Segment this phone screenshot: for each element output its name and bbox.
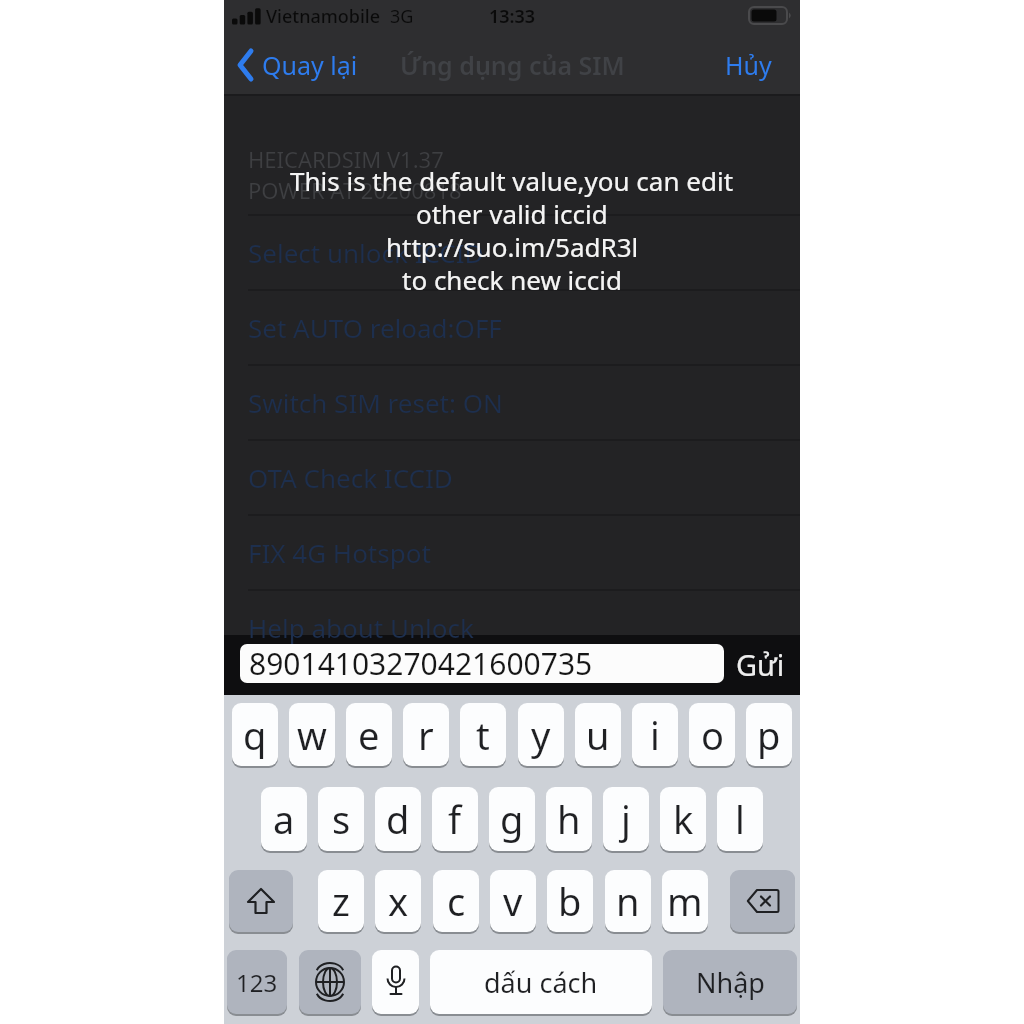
button[interactable]: u <box>575 703 621 766</box>
button[interactable]: Gửi <box>736 641 1024 687</box>
button[interactable]: d <box>375 787 421 851</box>
staticText: Ứng dụng của SIM <box>400 48 625 82</box>
button[interactable]: x <box>375 870 421 932</box>
staticText: 89014103270421600735 <box>249 643 593 684</box>
staticText: s <box>332 793 351 845</box>
staticText: http://suo.im/5adR3l <box>386 229 639 264</box>
staticText: Nhập <box>696 964 765 1001</box>
button[interactable]: Help about Unlock <box>248 606 808 648</box>
staticText: h <box>557 793 581 845</box>
staticText: POWER AT 20200818 <box>248 175 462 205</box>
staticText: e <box>358 709 380 761</box>
button[interactable]: l <box>717 787 763 851</box>
button[interactable]: 123 <box>227 950 287 1014</box>
button[interactable]: h <box>546 787 592 851</box>
button[interactable]: FIX 4G Hotspot <box>248 531 808 573</box>
button[interactable]: q <box>232 703 278 766</box>
staticText: other valid iccid <box>416 196 608 231</box>
button[interactable]: Hủy <box>725 45 1024 85</box>
staticText: HEICARDSIM V1.37 <box>248 144 444 174</box>
staticText: FIX 4G Hotspot <box>248 535 431 570</box>
staticText: 3G <box>390 4 414 29</box>
button[interactable] <box>299 950 361 1014</box>
staticText: i <box>650 709 660 761</box>
staticText: g <box>500 793 524 845</box>
staticText: OTA Check ICCID <box>248 460 453 495</box>
staticText: y <box>531 709 551 761</box>
button[interactable]: Quay lại <box>262 45 822 85</box>
staticText: j <box>621 793 631 845</box>
button[interactable] <box>238 50 254 80</box>
button[interactable]: v <box>490 870 536 932</box>
button[interactable]: Set AUTO reload:OFF <box>248 306 808 348</box>
button[interactable]: z <box>318 870 364 932</box>
button[interactable] <box>372 950 419 1014</box>
button[interactable]: p <box>746 703 792 766</box>
staticText: r <box>418 709 434 761</box>
staticText: to check new iccid <box>402 262 622 297</box>
staticText: n <box>616 875 640 927</box>
button[interactable]: f <box>432 787 478 851</box>
staticText: Gửi <box>736 645 785 684</box>
button[interactable]: s <box>318 787 364 851</box>
button[interactable] <box>229 870 293 932</box>
staticText: c <box>447 875 466 927</box>
staticText: f <box>448 793 462 845</box>
staticText: 13:33 <box>489 4 536 29</box>
button[interactable]: c <box>433 870 479 932</box>
button[interactable]: e <box>346 703 392 766</box>
staticText: u <box>586 709 610 761</box>
button[interactable]: y <box>518 703 564 766</box>
staticText: w <box>297 709 327 761</box>
staticText: l <box>735 793 745 845</box>
staticText: This is the default value,you can edit <box>290 163 734 198</box>
button[interactable]: dấu cách <box>430 950 652 1014</box>
button[interactable]: Switch SIM reset: ON <box>248 381 808 423</box>
staticText: Vietnamobile <box>266 4 380 29</box>
staticText: b <box>558 875 582 927</box>
button[interactable]: b <box>547 870 593 932</box>
staticText: 123 <box>236 966 278 999</box>
button[interactable]: i <box>632 703 678 766</box>
staticText: dấu cách <box>484 964 598 1001</box>
staticText: q <box>243 709 267 761</box>
button[interactable]: o <box>689 703 735 766</box>
button[interactable]: OTA Check ICCID <box>248 456 808 498</box>
staticText: d <box>386 793 410 845</box>
staticText: p <box>757 709 781 761</box>
button[interactable]: w <box>289 703 335 766</box>
staticText: t <box>476 709 490 761</box>
button[interactable]: m <box>662 870 708 932</box>
staticText: z <box>332 875 350 927</box>
button[interactable]: k <box>660 787 706 851</box>
staticText: Help about Unlock <box>248 610 474 645</box>
button[interactable]: r <box>403 703 449 766</box>
staticText: k <box>673 793 694 845</box>
staticText: o <box>701 709 724 761</box>
button[interactable] <box>240 644 724 683</box>
staticText: Switch SIM reset: ON <box>248 385 503 420</box>
button[interactable]: t <box>460 703 506 766</box>
button[interactable] <box>730 870 795 932</box>
button[interactable]: a <box>261 787 307 851</box>
staticText: x <box>388 875 409 927</box>
button[interactable]: Select unlock ICCID <box>248 231 808 273</box>
staticText: v <box>503 875 523 927</box>
button[interactable]: n <box>605 870 651 932</box>
staticText: Set AUTO reload:OFF <box>248 310 502 345</box>
button[interactable]: Nhập <box>663 950 797 1014</box>
button[interactable]: g <box>489 787 535 851</box>
staticText: Quay lại <box>262 48 358 82</box>
staticText: a <box>273 793 295 845</box>
button[interactable]: j <box>603 787 649 851</box>
staticText: m <box>667 875 703 927</box>
staticText: Hủy <box>725 48 772 82</box>
staticText: Select unlock ICCID <box>248 235 484 270</box>
